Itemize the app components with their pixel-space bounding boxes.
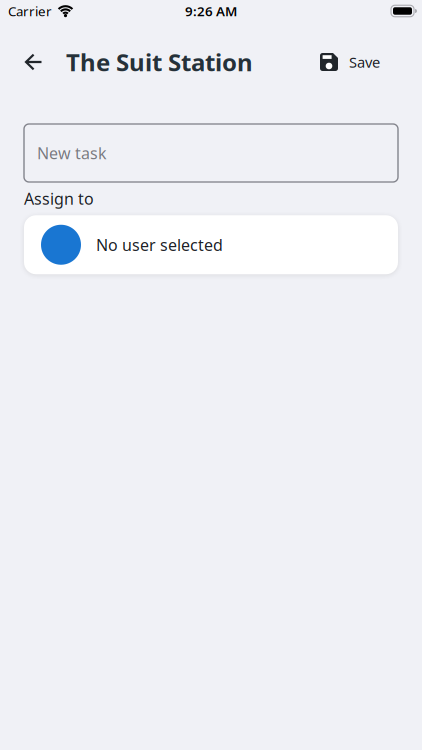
staticText: The Suit Station bbox=[66, 46, 253, 78]
button[interactable]: Save bbox=[320, 52, 422, 72]
staticText: Save bbox=[349, 52, 380, 72]
button[interactable] bbox=[0, 54, 42, 70]
staticText: New task bbox=[37, 142, 107, 164]
staticText: No user selected bbox=[96, 234, 223, 255]
staticText: Assign to bbox=[24, 188, 94, 209]
button[interactable]: New task bbox=[0, 124, 422, 182]
staticText: 9:26 AM bbox=[185, 2, 237, 20]
staticText: Carrier bbox=[8, 2, 52, 20]
button[interactable]: No user selected bbox=[0, 209, 422, 274]
